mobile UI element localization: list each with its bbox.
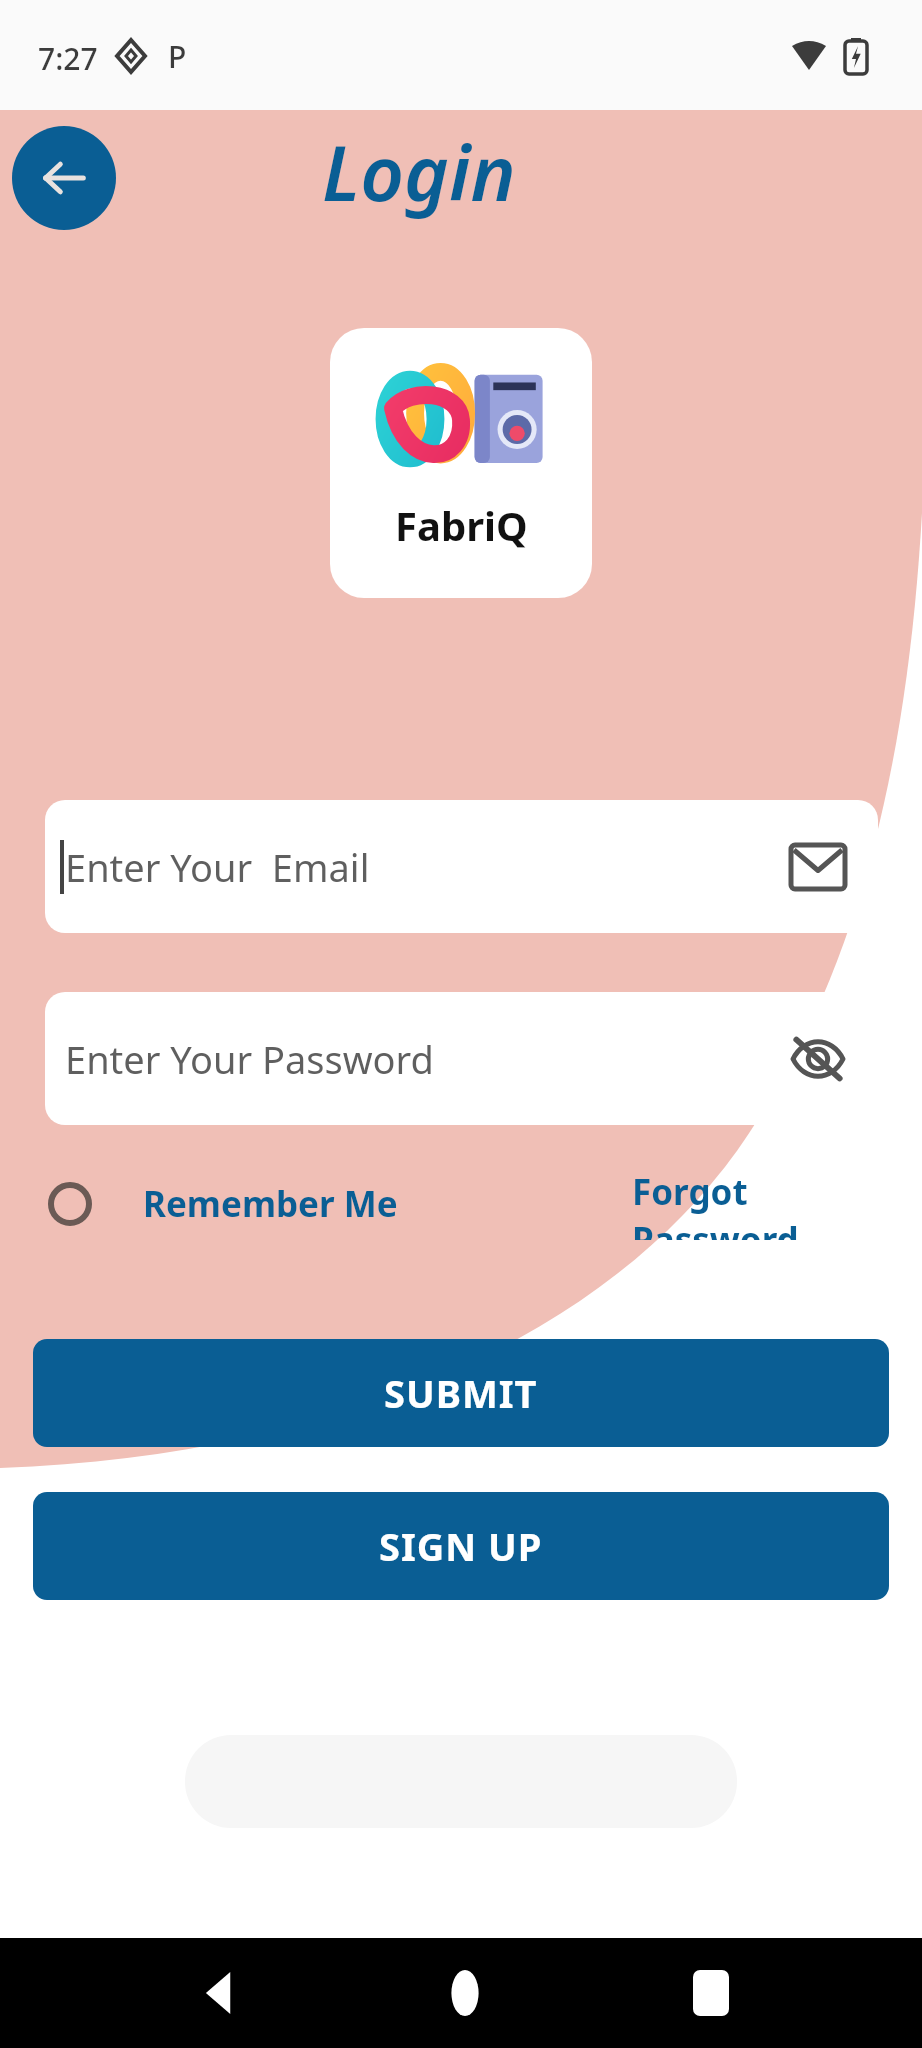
button[interactable]: SIGN UP bbox=[33, 1492, 889, 1600]
button[interactable]: Email bbox=[782, 831, 854, 903]
button[interactable]: SUBMIT bbox=[33, 1339, 889, 1447]
staticText: Remember Me bbox=[143, 1180, 398, 1228]
button[interactable]: Forgot Password bbox=[620, 1168, 902, 1240]
staticText: SUBMIT bbox=[384, 1367, 538, 1419]
staticText: Enter Your Password bbox=[65, 1033, 434, 1085]
button[interactable]: Back bbox=[12, 126, 116, 230]
button[interactable]: Home bbox=[414, 1948, 516, 2038]
button[interactable]: Enter Your Email bbox=[45, 800, 878, 933]
staticText: P bbox=[168, 36, 187, 77]
button[interactable]: FabriQ bbox=[330, 328, 592, 598]
staticText: 7:27 bbox=[38, 38, 98, 79]
staticText: FabriQ bbox=[395, 498, 528, 552]
button[interactable]: Toggle password visibility bbox=[782, 1023, 854, 1095]
staticText: Login bbox=[322, 120, 516, 224]
button[interactable]: Remember Me bbox=[40, 1168, 320, 1240]
staticText: Forgot Password bbox=[632, 1168, 914, 1240]
button[interactable]: Enter Your Password bbox=[45, 992, 878, 1125]
staticText: SIGN UP bbox=[379, 1520, 543, 1572]
button[interactable]: Recent apps bbox=[660, 1948, 762, 2038]
staticText: Enter Your Email bbox=[65, 841, 370, 893]
button[interactable]: Back bbox=[170, 1948, 272, 2038]
